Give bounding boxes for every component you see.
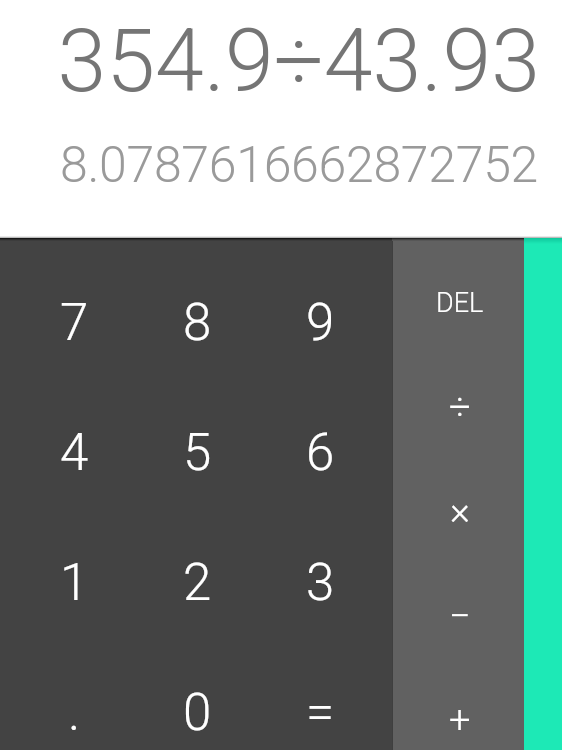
staticText: 2 [183, 553, 212, 613]
button[interactable]: Add [394, 668, 526, 750]
staticText: 8 [183, 293, 212, 353]
staticText: 1 [60, 553, 89, 613]
button[interactable]: 0 [136, 648, 259, 750]
staticText: = [306, 683, 335, 743]
staticText: 5 [183, 423, 212, 483]
button[interactable]: 3 [259, 518, 382, 648]
button[interactable]: Subtract [394, 564, 526, 668]
button[interactable]: 8 [136, 258, 259, 388]
staticText: 8.0787616662872752 [59, 136, 538, 195]
staticText: 354.9÷43.93 [57, 9, 540, 112]
button[interactable]: 5 [136, 388, 259, 518]
staticText: 9 [306, 293, 335, 353]
button[interactable]: 7 [12, 258, 136, 388]
button[interactable]: 6 [259, 388, 382, 518]
button[interactable]: 1 [12, 518, 136, 648]
button[interactable]: 9 [259, 258, 382, 388]
staticText: 3 [306, 553, 335, 613]
staticText: 4 [60, 423, 89, 483]
button[interactable]: Divide [394, 355, 526, 459]
button[interactable]: 4 [12, 388, 136, 518]
staticText: 7 [60, 293, 89, 353]
staticText: ÷ [449, 385, 471, 430]
button[interactable]: . [12, 648, 136, 750]
staticText: + [449, 698, 471, 743]
staticText: . [68, 683, 81, 743]
staticText: 6 [306, 423, 335, 483]
staticText: 0 [183, 683, 212, 743]
button[interactable]: 2 [136, 518, 259, 648]
button[interactable]: = [259, 648, 382, 750]
button[interactable]: Delete [394, 251, 526, 355]
staticText: DEL [436, 287, 484, 319]
button[interactable]: Multiply [394, 459, 526, 563]
staticText: − [449, 594, 471, 639]
staticText: × [450, 489, 470, 534]
